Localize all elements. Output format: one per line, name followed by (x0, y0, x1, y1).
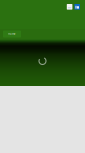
button[interactable]: Home (3, 30, 21, 37)
button[interactable]: LinkedIn (74, 4, 80, 10)
button[interactable]: News (67, 4, 72, 10)
staticText: Home (8, 32, 16, 36)
